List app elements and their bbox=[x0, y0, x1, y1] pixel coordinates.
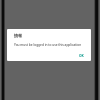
staticText: You must be logged in to use this applic… bbox=[14, 43, 82, 47]
button[interactable]: OK bbox=[77, 52, 86, 58]
staticText: 情報 bbox=[14, 33, 22, 38]
staticText: OK bbox=[79, 53, 84, 57]
staticText: 情報 bbox=[14, 33, 22, 38]
staticText: You must be logged in to use this applic… bbox=[14, 43, 82, 47]
button[interactable]: Dismiss dialog bbox=[0, 0, 100, 100]
